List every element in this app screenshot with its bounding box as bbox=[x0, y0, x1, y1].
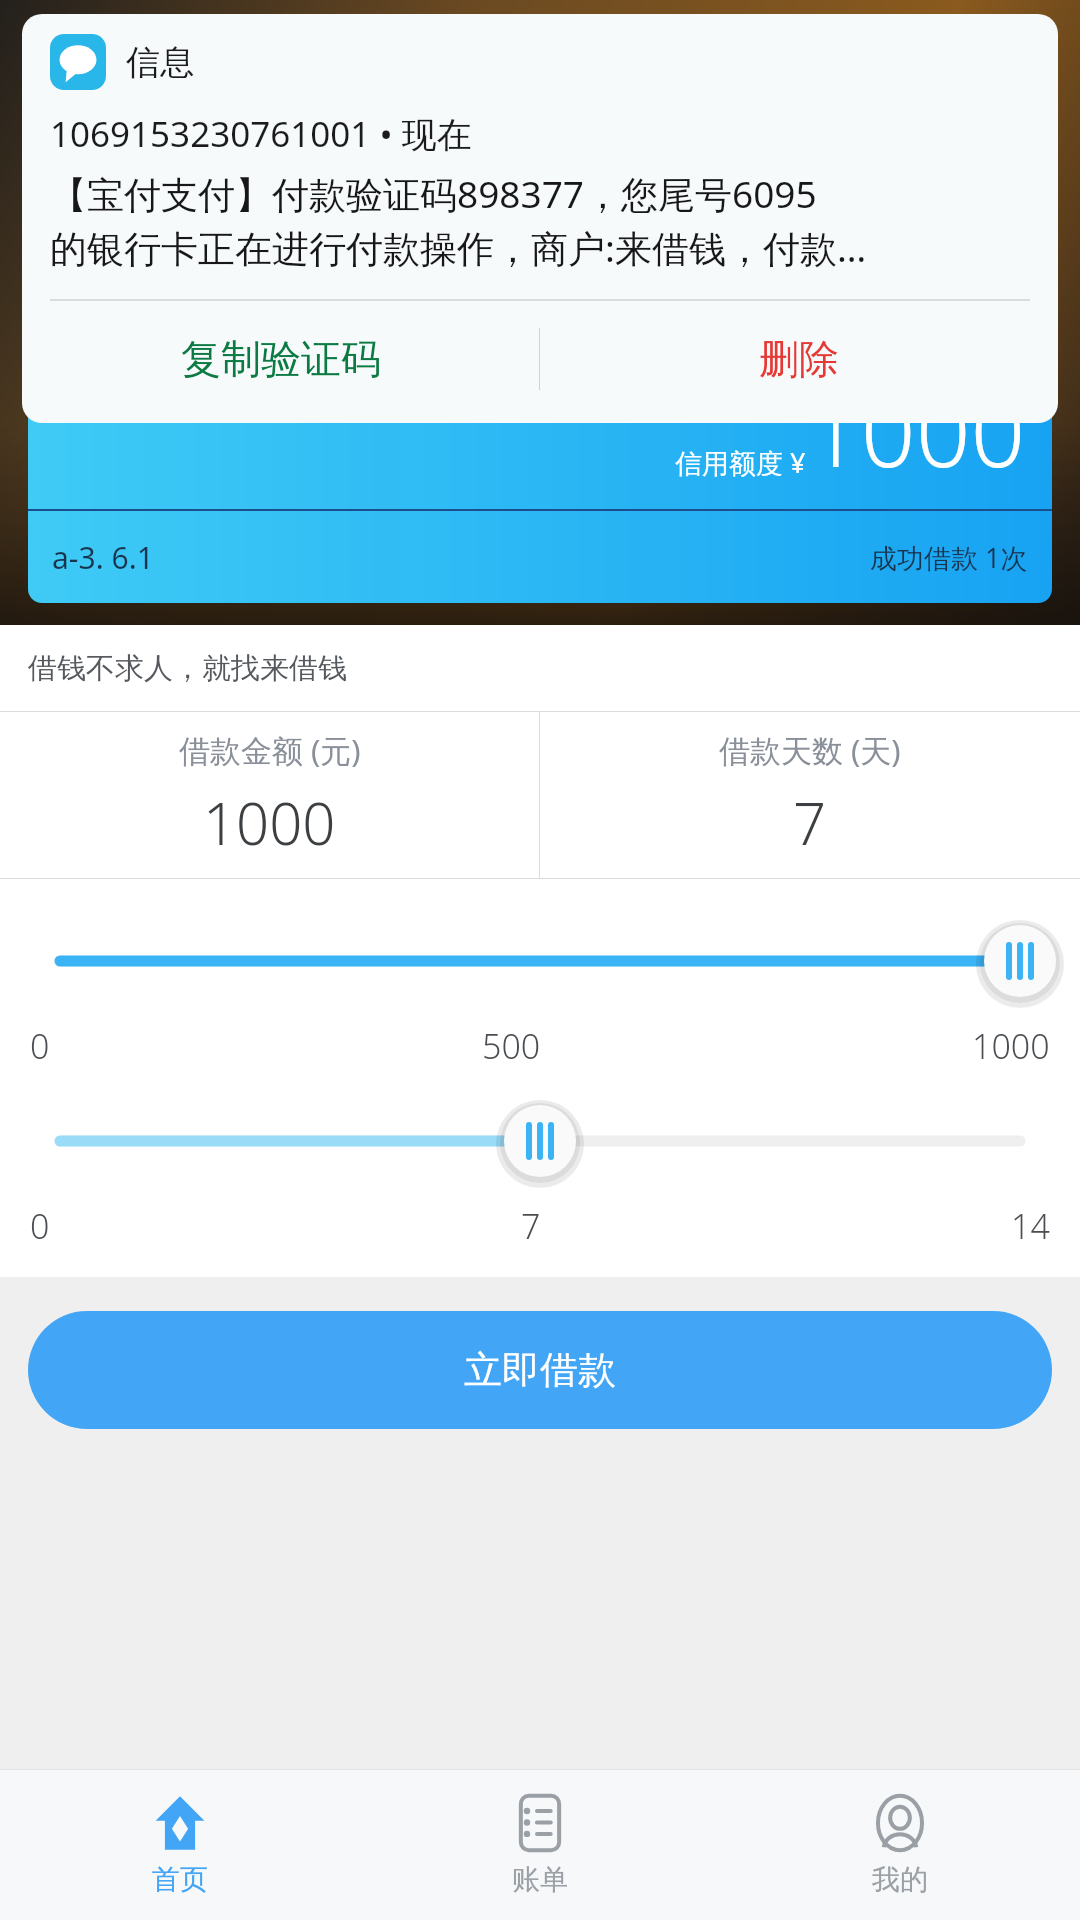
staticText: 借款天数 (天) bbox=[719, 729, 901, 771]
staticText: 借钱不求人，就找来借钱 bbox=[28, 650, 347, 687]
staticText: 0 bbox=[30, 1203, 50, 1249]
staticText: 我的 bbox=[872, 1862, 928, 1897]
button[interactable]: 信用额度 ¥ bbox=[28, 273, 1052, 603]
staticText: 14 bbox=[1011, 1203, 1050, 1249]
staticText: 复制验证码 bbox=[181, 334, 381, 384]
staticText: 500 bbox=[482, 1023, 541, 1069]
staticText: 7 bbox=[793, 783, 827, 862]
button[interactable]: Slider bbox=[0, 1093, 1080, 1189]
button[interactable]: 复制验证码 bbox=[22, 301, 539, 417]
other: Bills bbox=[511, 1794, 569, 1852]
staticText: 账单 bbox=[512, 1862, 568, 1897]
staticText: 1000 bbox=[806, 364, 1026, 495]
button[interactable]: 删除 bbox=[540, 301, 1058, 417]
staticText: 【宝付支付】付款验证码898377，您尾号6095 的银行卡正在进行付款操作，商… bbox=[50, 168, 867, 273]
button[interactable]: 立即借款 bbox=[28, 1311, 1052, 1429]
staticText: 0 bbox=[30, 1023, 50, 1069]
staticText: 成功借款 1次 bbox=[870, 539, 1028, 576]
button[interactable]: 借款天数 (天) bbox=[540, 712, 1080, 878]
staticText: 1069153230761001 • 现在 bbox=[50, 110, 472, 158]
staticText: 1000 bbox=[203, 783, 336, 862]
staticText: a-3. 6.1 bbox=[52, 537, 154, 578]
button[interactable]: Home bbox=[0, 1770, 360, 1920]
other: Profile bbox=[871, 1794, 929, 1852]
button[interactable]: Slider bbox=[0, 913, 1080, 1009]
button[interactable]: Profile bbox=[720, 1770, 1080, 1920]
staticText: 删除 bbox=[759, 334, 839, 384]
other: Home bbox=[151, 1794, 209, 1852]
staticText: 1000 bbox=[972, 1023, 1050, 1069]
staticText: 首页 bbox=[152, 1862, 208, 1897]
staticText: 信用额度 ¥ bbox=[675, 444, 806, 481]
button[interactable]: Bills bbox=[360, 1770, 720, 1920]
button[interactable]: 信息 bbox=[22, 14, 1058, 423]
staticText: 借款金额 (元) bbox=[179, 729, 361, 771]
button[interactable]: 借款金额 (元) bbox=[0, 712, 539, 878]
staticText: 立即借款 bbox=[464, 1346, 616, 1394]
staticText: 7 bbox=[521, 1203, 541, 1249]
staticText: 信息 bbox=[126, 41, 194, 84]
